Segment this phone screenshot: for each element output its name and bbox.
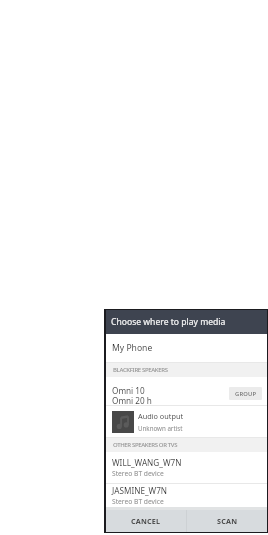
staticText: Audio output	[138, 411, 184, 421]
button[interactable]: GROUP	[229, 387, 262, 400]
staticText: Omni 10 Omni 20 h	[112, 385, 152, 406]
staticText: OTHER SPEAKERS OR TVS	[113, 441, 178, 449]
staticText: GROUP	[235, 390, 257, 398]
staticText: WILL_WANG_W7N	[112, 457, 182, 468]
staticText: BLACKFIRE SPEAKERS	[113, 366, 168, 374]
button[interactable]: JASMINE_W7N	[106, 484, 267, 507]
staticText: My Phone	[112, 342, 153, 354]
staticText: Unknown artist	[138, 424, 183, 432]
staticText: JASMINE_W7N	[112, 485, 168, 496]
button[interactable]: SCAN	[187, 510, 267, 532]
staticText: Stereo BT device	[112, 469, 164, 478]
staticText: CANCEL	[131, 516, 161, 526]
button[interactable]: My Phone	[106, 334, 267, 362]
button[interactable]: WILL_WANG_W7N	[106, 452, 267, 483]
staticText: SCAN	[217, 516, 238, 526]
button[interactable]: CANCEL	[106, 510, 186, 532]
button[interactable]: Audio output	[106, 406, 267, 437]
staticText: Stereo BT device	[112, 497, 164, 506]
button[interactable]: Omni 10 Omni 20 h	[106, 377, 267, 405]
staticText: Choose where to play media	[111, 316, 226, 328]
